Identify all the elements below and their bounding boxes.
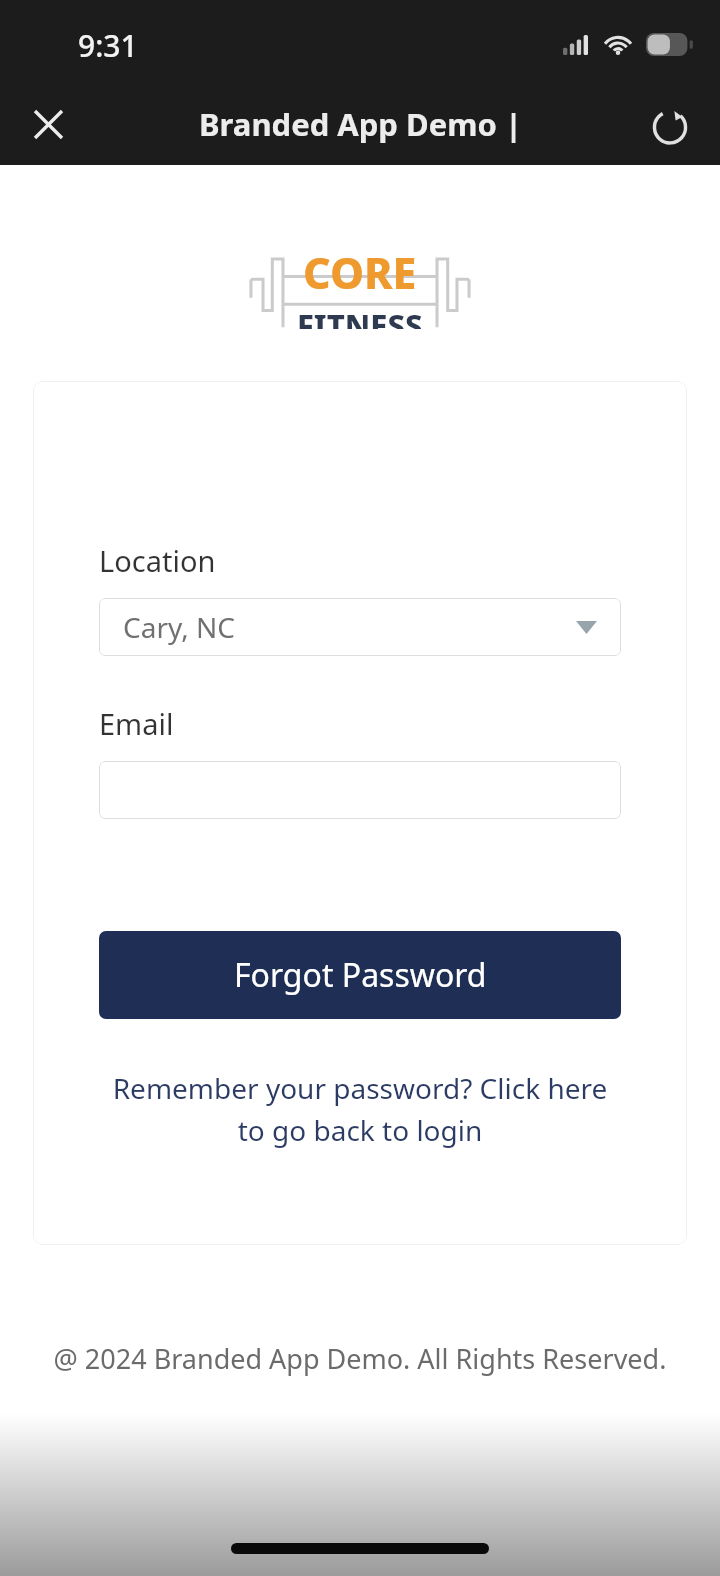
- button[interactable]: Remember your password? Click here to go…: [99, 1069, 621, 1149]
- staticText: Email: [99, 704, 174, 743]
- button[interactable]: Forgot Password: [99, 931, 621, 1019]
- staticText: Branded App Demo |: [199, 103, 522, 145]
- staticText: Forgot Password: [234, 953, 487, 997]
- staticText: 9:31: [78, 25, 138, 66]
- button[interactable]: Refresh: [638, 92, 702, 156]
- staticText: Remember your password? Click here to go…: [99, 1069, 621, 1149]
- staticText: Cary, NC: [123, 608, 235, 646]
- staticText: CORE: [303, 243, 417, 302]
- button[interactable]: Cary, NC: [99, 598, 621, 656]
- button[interactable]: Close: [17, 93, 79, 155]
- staticText: @ 2024 Branded App Demo. All Rights Rese…: [0, 1340, 720, 1377]
- staticText: Location: [99, 541, 216, 580]
- button[interactable]: [99, 761, 621, 819]
- staticText: FITNESS: [297, 304, 423, 329]
